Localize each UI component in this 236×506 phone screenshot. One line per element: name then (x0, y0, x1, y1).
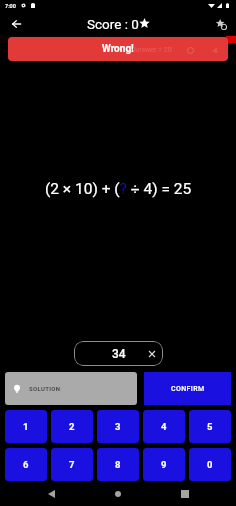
button[interactable]: 2 (51, 410, 93, 443)
button[interactable]: Recents (175, 484, 195, 504)
staticText: SOLUTION (29, 385, 61, 392)
staticText: 7 (69, 459, 75, 470)
button[interactable]: Home (108, 484, 128, 504)
staticText: 1 (23, 421, 29, 432)
button[interactable]: 9 (143, 448, 185, 481)
staticText: 3 (115, 421, 121, 432)
staticText: Wrong! (102, 43, 134, 55)
button[interactable]: Back (41, 484, 61, 504)
staticText: Score : 0 (87, 16, 139, 32)
staticText: 8 (115, 459, 121, 470)
staticText: 5 (207, 421, 213, 432)
staticText: 0 (207, 459, 213, 470)
button[interactable]: 8 (97, 448, 139, 481)
staticText: 7:00 (5, 3, 16, 9)
staticText: 6 (23, 459, 29, 470)
button[interactable]: CONFIRM (144, 372, 231, 405)
button[interactable]: 1 (5, 410, 47, 443)
staticText: 9 (161, 459, 167, 470)
button[interactable]: 0 (189, 448, 231, 481)
staticText: 34 (112, 347, 126, 361)
button[interactable]: 5 (189, 410, 231, 443)
button[interactable]: SOLUTION (5, 372, 137, 405)
button[interactable]: Back (6, 14, 26, 34)
staticText: Answer = 20 (133, 46, 172, 54)
button[interactable]: 6 (5, 448, 47, 481)
staticText: 2 (69, 421, 75, 432)
staticText: 4 (161, 421, 167, 432)
button[interactable]: 7 (51, 448, 93, 481)
staticText: (2 × 10) + (? ÷ 4) = 25 (45, 180, 192, 198)
button[interactable]: 34 (74, 341, 163, 366)
button[interactable]: Wrong! (8, 37, 228, 61)
button[interactable]: Clear (141, 341, 163, 366)
staticText: 4 (213, 46, 218, 55)
button[interactable]: Achievements (211, 14, 231, 34)
button[interactable]: 3 (97, 410, 139, 443)
button[interactable]: 4 (143, 410, 185, 443)
staticText: CONFIRM (171, 385, 205, 393)
